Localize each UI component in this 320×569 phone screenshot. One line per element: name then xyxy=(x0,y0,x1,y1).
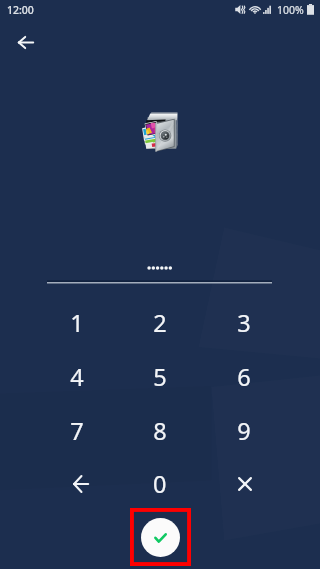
staticText: 7 xyxy=(70,415,84,447)
button[interactable]: Confirm xyxy=(130,508,191,566)
button[interactable]: 4 xyxy=(39,351,115,403)
staticText: 4 xyxy=(70,361,84,393)
button[interactable]: 9 xyxy=(206,405,282,457)
button[interactable]: 1 xyxy=(39,297,115,349)
button[interactable]: 5 xyxy=(122,351,198,403)
button[interactable]: Back xyxy=(8,24,44,60)
staticText: 9 xyxy=(237,415,251,447)
button[interactable]: 0 xyxy=(122,458,198,510)
staticText: 3 xyxy=(237,307,251,339)
button[interactable]: 7 xyxy=(39,405,115,457)
button[interactable]: 6 xyxy=(206,351,282,403)
button[interactable]: 8 xyxy=(122,405,198,457)
button[interactable]: 2 xyxy=(122,297,198,349)
staticText: 12:00 xyxy=(7,3,34,17)
staticText: 8 xyxy=(153,415,167,447)
button[interactable]: Clear xyxy=(207,458,283,510)
staticText: 100% xyxy=(277,3,304,17)
button[interactable]: Delete xyxy=(43,458,119,510)
staticText: 0 xyxy=(153,468,167,500)
staticText: 5 xyxy=(153,361,167,393)
staticText: 2 xyxy=(153,307,167,339)
button[interactable]: 3 xyxy=(206,297,282,349)
staticText: 6 xyxy=(237,361,251,393)
staticText: 1 xyxy=(70,307,84,339)
